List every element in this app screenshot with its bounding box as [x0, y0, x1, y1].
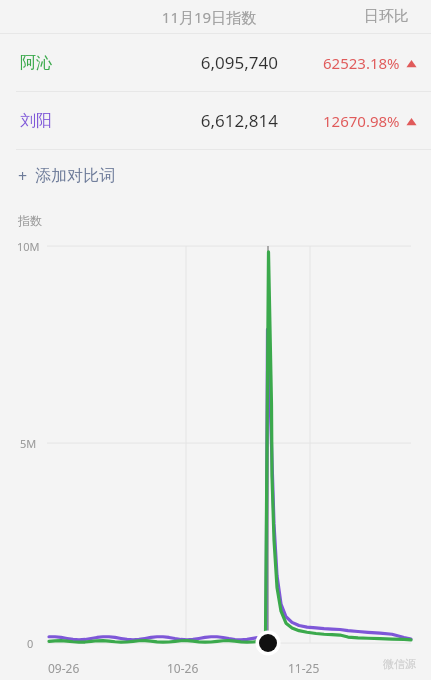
- staticText: 日环比: [364, 7, 409, 26]
- staticText: 10-26: [167, 660, 199, 676]
- staticText: +: [18, 165, 28, 187]
- staticText: 11月19日指数: [140, 7, 278, 27]
- staticText: 刘阳: [20, 111, 52, 131]
- staticText: 12670.98%: [323, 111, 400, 131]
- staticText: 6,612,814: [140, 109, 278, 132]
- button[interactable]: 阿沁: [0, 34, 431, 91]
- staticText: 微信源: [383, 657, 416, 671]
- staticText: 11-25: [288, 660, 320, 676]
- staticText: 5M: [20, 436, 37, 451]
- staticText: 6,095,740: [140, 51, 278, 74]
- staticText: 添加对比词: [35, 166, 115, 186]
- staticText: 09-26: [48, 660, 80, 676]
- button[interactable]: 刘阳: [0, 92, 431, 149]
- staticText: 10M: [17, 239, 40, 254]
- staticText: 指数: [18, 213, 42, 228]
- staticText: 0: [27, 636, 34, 651]
- button[interactable]: +: [0, 150, 431, 202]
- staticText: 阿沁: [20, 53, 52, 73]
- staticText: 62523.18%: [323, 53, 400, 73]
